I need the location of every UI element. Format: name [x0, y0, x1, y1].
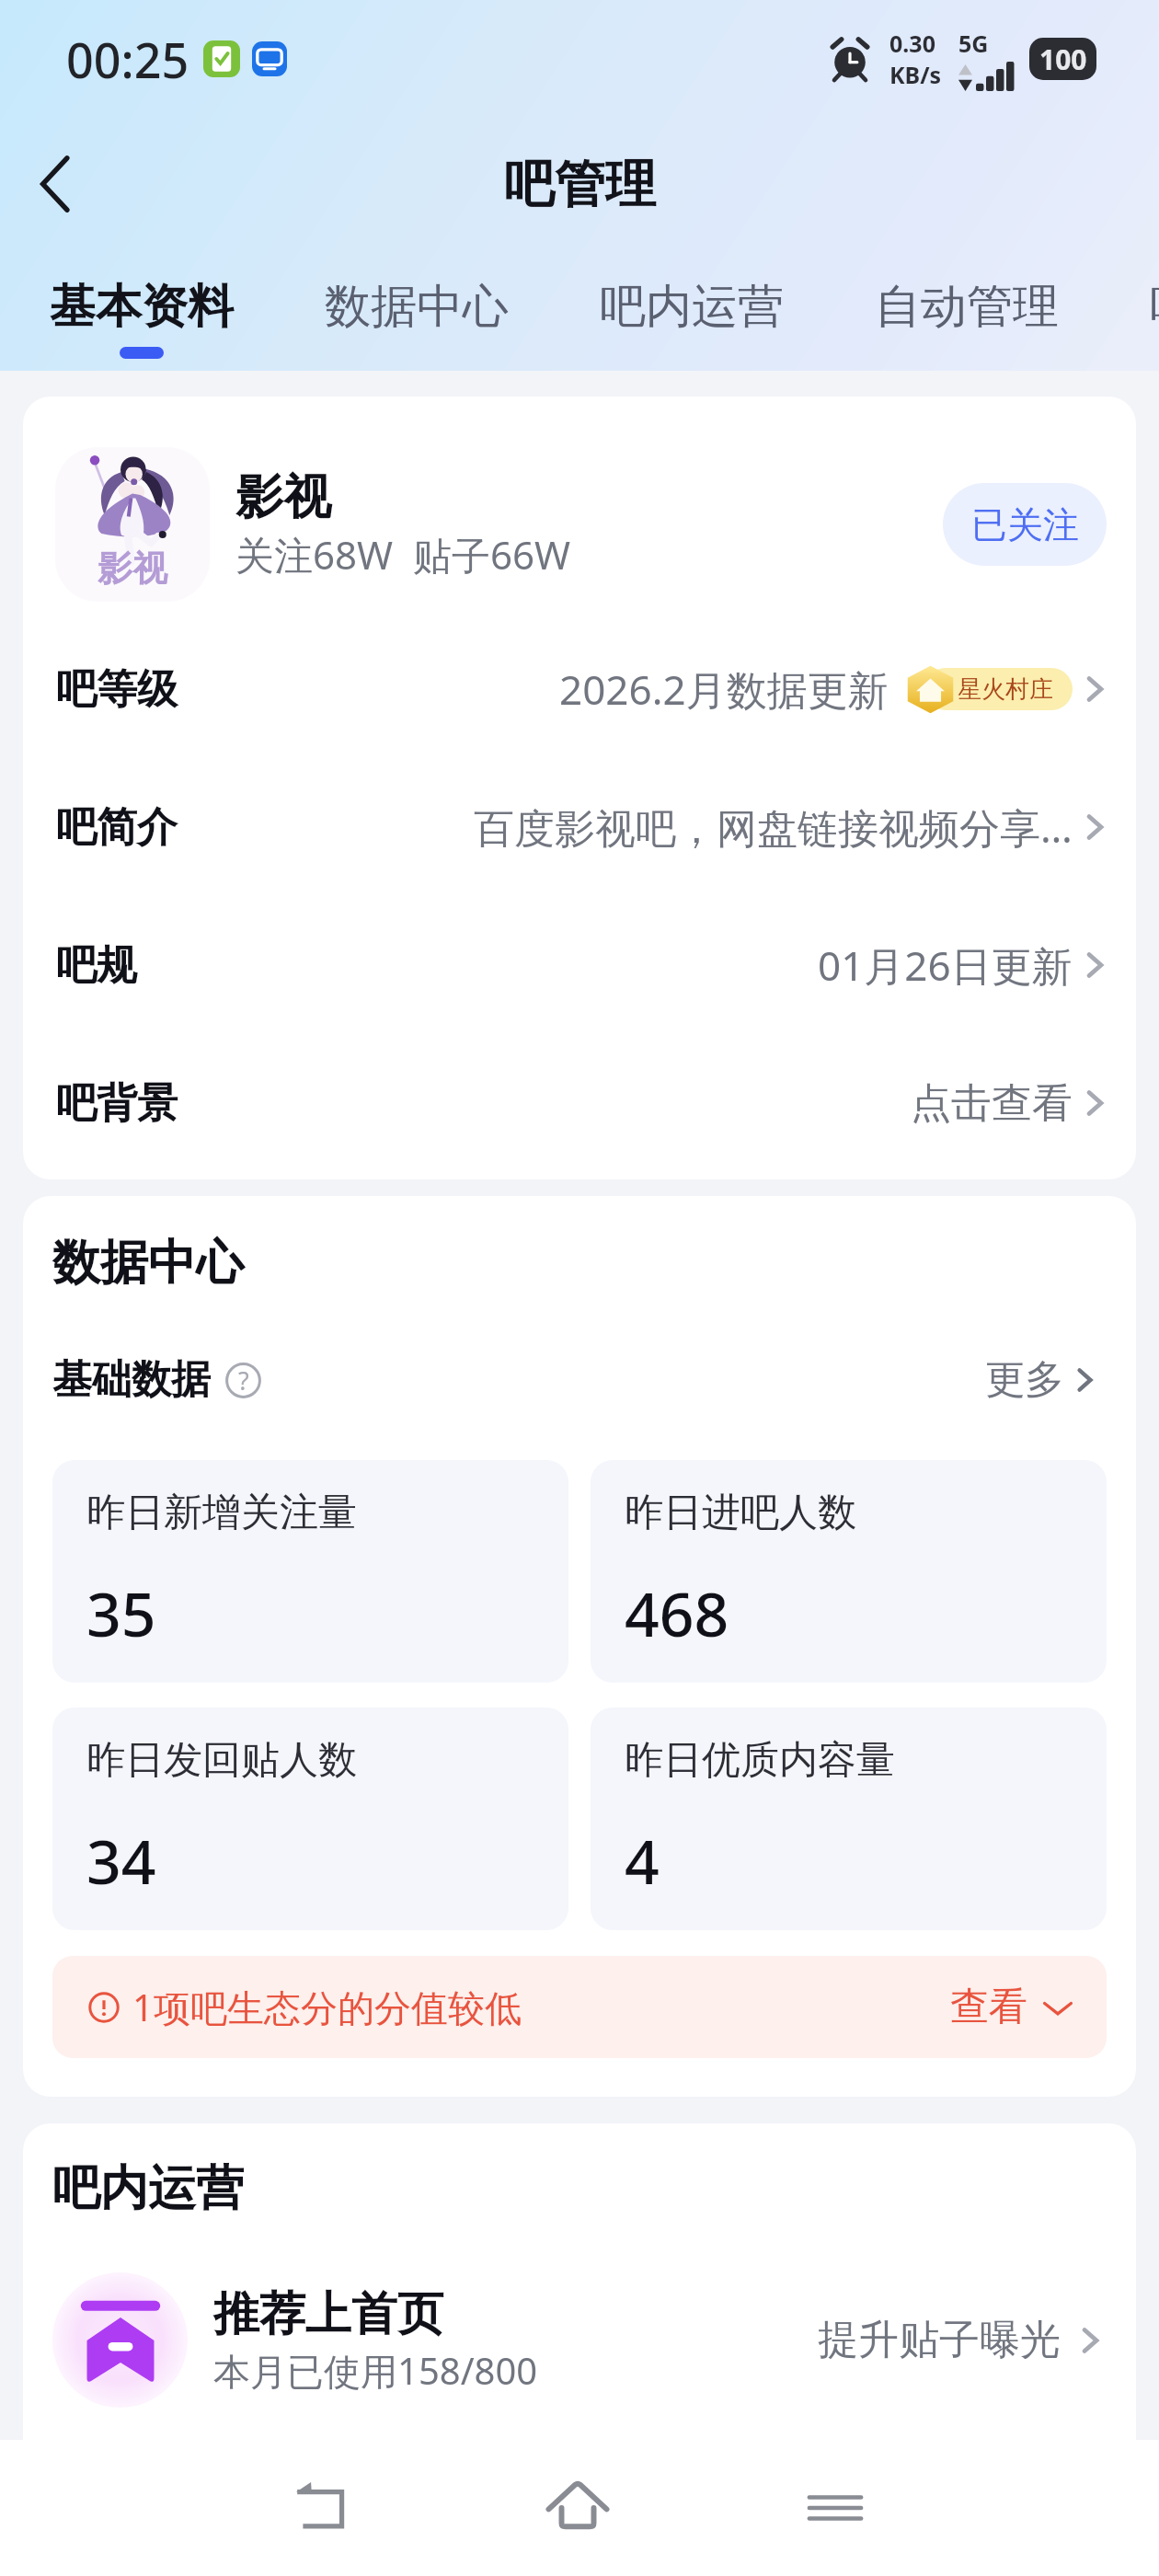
staticText: 影视: [98, 546, 167, 591]
button[interactable]: 昨日发回贴人数: [52, 1708, 568, 1930]
staticText: 自动管理: [875, 278, 1059, 336]
staticText: 昨日优质内容量: [625, 1736, 895, 1785]
staticText: 数据中心: [52, 1233, 244, 1294]
staticText: 基本资料: [50, 278, 234, 336]
staticText: 本月已使用158/800: [213, 2345, 538, 2396]
button[interactable]: 吧背景: [23, 1034, 1136, 1172]
button[interactable]: 自动管理: [875, 278, 1150, 347]
staticText: ?: [238, 1363, 249, 1397]
button[interactable]: Back: [251, 2440, 389, 2576]
staticText: 星火村庄: [958, 674, 1053, 705]
staticText: 昨日进吧人数: [625, 1489, 856, 1537]
button[interactable]: 基本资料: [50, 278, 325, 359]
staticText: 34: [86, 1819, 156, 1902]
staticText: 吧简介: [56, 802, 178, 853]
staticText: 昨日新增关注量: [86, 1489, 357, 1537]
button[interactable]: 影视: [23, 397, 1136, 620]
staticText: 4: [625, 1819, 660, 1902]
button[interactable]: 吧: [1150, 278, 1159, 347]
button[interactable]: 1项吧生态分的分值较低: [52, 1956, 1107, 2058]
button[interactable]: 已关注: [943, 483, 1107, 566]
staticText: 提升贴子曝光: [818, 2315, 1061, 2365]
button[interactable]: 数据中心: [325, 278, 600, 347]
staticText: 昨日发回贴人数: [86, 1736, 357, 1785]
staticText: 查看: [950, 1983, 1027, 2031]
button[interactable]: Home: [509, 2440, 647, 2576]
button[interactable]: 昨日进吧人数: [591, 1460, 1107, 1683]
button[interactable]: 昨日新增关注量: [52, 1460, 568, 1683]
button[interactable]: 推荐上首页: [52, 2272, 1114, 2408]
staticText: 已关注: [971, 502, 1079, 547]
button[interactable]: 吧规: [23, 896, 1136, 1034]
staticText: 2026.2月数据更新: [559, 661, 889, 717]
button[interactable]: 昨日优质内容量: [591, 1708, 1107, 1930]
button[interactable]: Menu: [766, 2440, 904, 2576]
staticText: 5G: [958, 28, 989, 59]
button[interactable]: 吧简介: [23, 758, 1136, 896]
staticText: 01月26日更新: [818, 937, 1073, 993]
staticText: 00:25: [66, 27, 189, 92]
staticText: 数据中心: [325, 278, 509, 336]
staticText: 吧内运营: [600, 278, 784, 336]
staticText: 关注68W 贴子66W: [235, 528, 571, 581]
staticText: 吧内运营: [52, 2158, 244, 2219]
staticText: 更多: [985, 1355, 1064, 1405]
staticText: 吧等级: [56, 664, 178, 715]
staticText: 100: [1039, 40, 1087, 78]
staticText: 吧管理: [504, 153, 656, 216]
staticText: KB/s: [889, 59, 942, 90]
staticText: 推荐上首页: [213, 2285, 443, 2343]
staticText: 点击查看: [911, 1078, 1073, 1129]
staticText: 35: [86, 1571, 156, 1654]
button[interactable]: 吧等级: [23, 620, 1136, 758]
button[interactable]: Back: [6, 133, 108, 235]
button[interactable]: 更多: [985, 1355, 1107, 1405]
staticText: 468: [625, 1571, 729, 1654]
button[interactable]: 吧内运营: [600, 278, 875, 347]
staticText: 基础数据: [52, 1355, 211, 1405]
staticText: 吧: [1150, 278, 1159, 336]
staticText: 影视: [235, 467, 331, 528]
staticText: 吧规: [56, 940, 137, 991]
staticText: 0.30: [889, 28, 935, 59]
staticText: 百度影视吧，网盘链接视频分享…: [474, 799, 1073, 855]
staticText: 吧背景: [56, 1078, 178, 1129]
staticText: 1项吧生态分的分值较低: [132, 1982, 522, 2032]
